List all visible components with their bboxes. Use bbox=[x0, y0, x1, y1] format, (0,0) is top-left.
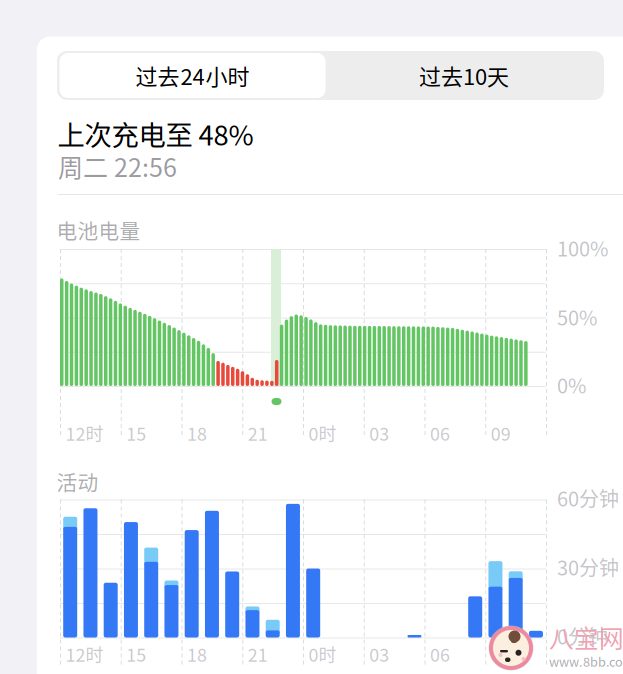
staticText: 0时 bbox=[308, 641, 336, 667]
staticText: www.8bb.com bbox=[549, 652, 623, 670]
staticText: 100% bbox=[557, 233, 608, 262]
staticText: 60分钟 bbox=[557, 483, 619, 512]
button[interactable]: 过去 24 小时 bbox=[0, 0, 266, 45]
staticText: 09 bbox=[491, 420, 511, 446]
staticText: 50% bbox=[557, 302, 597, 331]
staticText: 06 bbox=[430, 420, 450, 446]
staticText: 18 bbox=[187, 641, 207, 667]
staticText: 过去 24 小时 bbox=[135, 60, 249, 91]
staticText: 06 bbox=[430, 641, 450, 667]
staticText: 活动 bbox=[56, 466, 98, 496]
staticText: 上次充电至 48% bbox=[57, 114, 253, 153]
staticText: 电池电量 bbox=[56, 215, 140, 245]
staticText: 03 bbox=[369, 641, 389, 667]
staticText: 15 bbox=[126, 641, 146, 667]
staticText: 30分钟 bbox=[557, 552, 619, 581]
staticText: 0分钟 bbox=[557, 621, 608, 650]
staticText: 0时 bbox=[308, 420, 336, 446]
staticText: 0% bbox=[557, 370, 586, 399]
staticText: 03 bbox=[369, 420, 389, 446]
staticText: 15 bbox=[126, 420, 146, 446]
staticText: 八宝网 bbox=[549, 619, 623, 655]
staticText: 12时 bbox=[65, 641, 103, 667]
staticText: 09 bbox=[491, 641, 511, 667]
staticText: 过去10天 bbox=[419, 60, 509, 91]
staticText: 18 bbox=[187, 420, 207, 446]
staticText: 21 bbox=[248, 420, 268, 446]
button[interactable]: 过去10天 bbox=[0, 0, 274, 45]
staticText: 周二 22:56 bbox=[58, 148, 177, 184]
staticText: 12时 bbox=[65, 420, 103, 446]
staticText: 21 bbox=[248, 641, 268, 667]
